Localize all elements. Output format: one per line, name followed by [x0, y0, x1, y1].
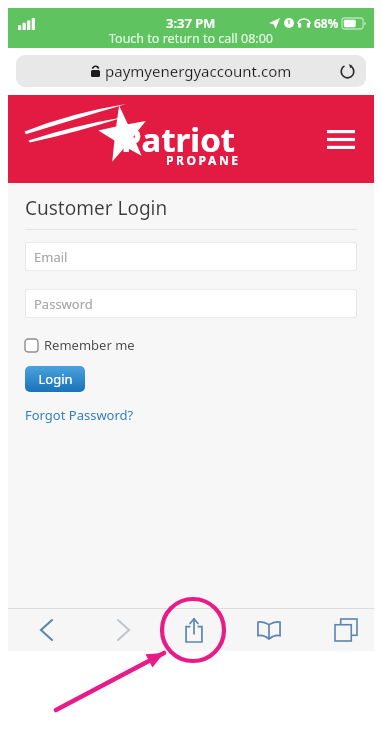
staticText: 68% — [314, 15, 339, 31]
button[interactable]: Share — [173, 609, 215, 651]
button[interactable]: Back — [26, 610, 66, 650]
button[interactable]: Reload — [336, 60, 358, 82]
button[interactable]: Forgot Password? — [25, 406, 134, 424]
staticText: PROPANE — [166, 152, 241, 168]
button[interactable]: Tabs — [325, 609, 367, 651]
button[interactable]: Bookmarks — [248, 609, 290, 651]
button[interactable]: Email — [25, 242, 357, 271]
button[interactable]: paymyenergyaccount.com — [16, 55, 366, 87]
button[interactable]: Forward — [103, 610, 143, 650]
staticText: Login — [38, 370, 73, 388]
staticText: Customer Login — [25, 195, 168, 221]
button[interactable]: Remember me — [25, 336, 135, 354]
staticText: Email — [34, 248, 68, 266]
staticText: 3:37 PM — [166, 14, 216, 32]
button[interactable]: Login — [25, 366, 85, 392]
staticText: paymyenergyaccount.com — [105, 61, 292, 81]
button[interactable]: Menu — [324, 122, 358, 156]
staticText: Remember me — [44, 336, 135, 354]
button[interactable]: Password — [25, 289, 357, 318]
staticText: Patriot — [121, 117, 236, 162]
staticText: Password — [34, 295, 93, 313]
staticText: Touch to return to call 08:00 — [109, 30, 273, 47]
staticText: Forgot Password? — [25, 406, 134, 424]
